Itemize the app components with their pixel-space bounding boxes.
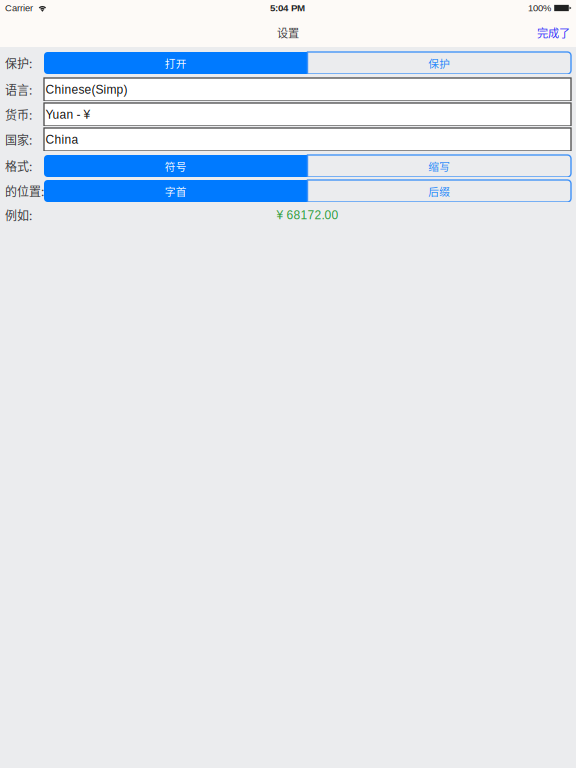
- staticText: 的位置:: [5, 182, 44, 200]
- button[interactable]: 打开: [44, 52, 307, 74]
- staticText: 国家:: [5, 131, 32, 148]
- staticText: 保护: [428, 55, 450, 71]
- staticText: 语言:: [5, 81, 32, 98]
- staticText: 设置: [277, 24, 299, 41]
- staticText: 字首: [165, 183, 187, 199]
- staticText: Chinese(Simp): [45, 83, 127, 96]
- staticText: 缩写: [428, 158, 450, 174]
- button[interactable]: 缩写: [307, 155, 571, 177]
- staticText: 5:04 PM: [270, 3, 305, 13]
- button[interactable]: China: [44, 128, 571, 151]
- button[interactable]: 符号: [44, 155, 307, 177]
- staticText: China: [45, 133, 78, 146]
- staticText: Carrier: [5, 3, 33, 13]
- staticText: 后缀: [428, 183, 450, 199]
- button[interactable]: Yuan - ¥: [44, 103, 571, 126]
- button[interactable]: Chinese(Simp): [44, 78, 571, 101]
- staticText: 打开: [165, 55, 187, 71]
- button[interactable]: 后缀: [307, 180, 571, 202]
- staticText: Yuan - ¥: [45, 108, 90, 121]
- staticText: 货币:: [5, 106, 32, 123]
- staticText: ¥ 68172.00: [276, 208, 338, 222]
- staticText: 100%: [528, 3, 551, 13]
- staticText: 例如:: [5, 206, 32, 224]
- staticText: 格式:: [5, 157, 32, 175]
- button[interactable]: 字首: [44, 180, 307, 202]
- staticText: 保护:: [5, 54, 32, 72]
- staticText: 符号: [165, 158, 187, 174]
- button[interactable]: 保护: [307, 52, 571, 74]
- staticText: 完成了: [537, 24, 570, 41]
- button[interactable]: 完成了: [537, 20, 576, 47]
